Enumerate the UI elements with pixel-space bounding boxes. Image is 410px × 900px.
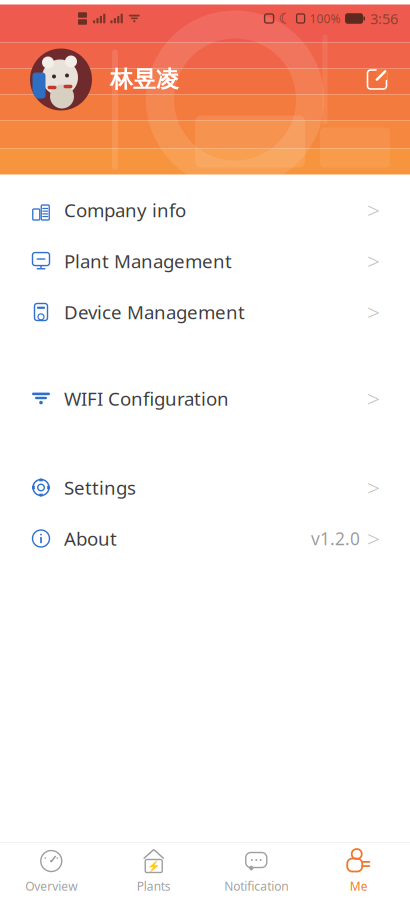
staticText: 100%	[310, 10, 341, 26]
staticText: >	[367, 383, 380, 413]
staticText: Overview	[25, 878, 77, 894]
button[interactable]: Overview	[0, 843, 102, 900]
button[interactable]: Me	[307, 843, 410, 900]
button[interactable]: Company info	[16, 184, 394, 235]
button[interactable]: Notification	[205, 843, 307, 900]
button[interactable]: WIFI Configuration	[16, 373, 394, 424]
staticText: >	[367, 297, 380, 327]
staticText: About	[64, 526, 117, 551]
staticText: 林昱凌	[110, 66, 179, 93]
staticText: >	[367, 246, 380, 276]
staticText: >	[367, 195, 380, 225]
staticText: Notification	[224, 878, 288, 894]
staticText: v1.2.0	[311, 527, 360, 550]
staticText: ⚡	[147, 860, 160, 872]
staticText: Settings	[64, 475, 136, 500]
staticText: WIFI Configuration	[64, 386, 229, 411]
staticText: Device Management	[64, 300, 245, 324]
button[interactable]: Device Management	[16, 286, 394, 337]
staticText: 3:56	[370, 9, 398, 28]
staticText: >	[367, 472, 380, 502]
button[interactable]: ⚡	[102, 843, 205, 900]
button[interactable]: Plant Management	[16, 235, 394, 286]
button[interactable]: About	[16, 513, 394, 564]
staticText: Me	[350, 878, 368, 894]
staticText: Plant Management	[64, 249, 232, 273]
staticText: >	[367, 523, 380, 553]
staticText: ☾	[279, 10, 292, 27]
button[interactable]: Edit profile	[364, 66, 410, 92]
button[interactable]: Settings	[16, 462, 394, 513]
staticText: Plants	[137, 878, 171, 894]
staticText: Company info	[64, 198, 186, 222]
